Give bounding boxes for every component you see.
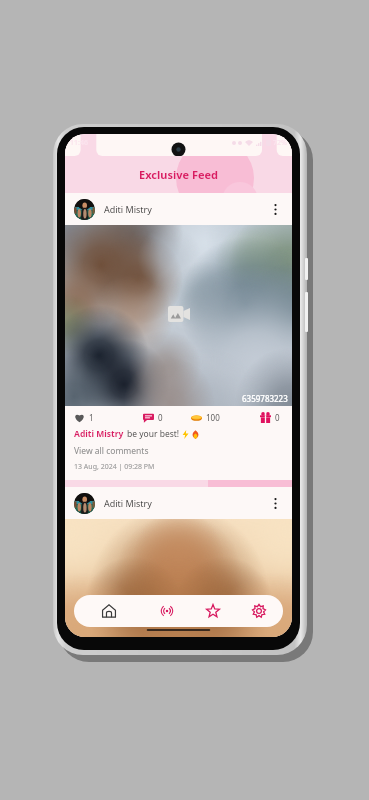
staticText: Exclusive Feed bbox=[139, 167, 219, 182]
staticText: be your best! bbox=[127, 428, 180, 440]
button[interactable]: Home bbox=[93, 595, 125, 627]
button[interactable]: Aditi Mistry bbox=[65, 193, 292, 225]
staticText: 100 bbox=[206, 412, 220, 423]
staticText: 0 bbox=[275, 412, 280, 423]
staticText: Aditi Mistry bbox=[104, 203, 152, 215]
button[interactable]: 6359783223 bbox=[65, 225, 292, 406]
staticText: 11:46 bbox=[70, 138, 88, 148]
button[interactable]: More options bbox=[266, 200, 284, 218]
button[interactable]: Aditi Mistry bbox=[65, 487, 292, 519]
button[interactable]: Favorites bbox=[197, 595, 229, 627]
button[interactable]: View all comments bbox=[74, 445, 149, 457]
staticText: Aditi Mistry bbox=[104, 497, 152, 509]
button[interactable] bbox=[65, 519, 292, 637]
button[interactable]: More options bbox=[266, 494, 284, 512]
staticText: 13 Aug, 2024 | 09:28 PM bbox=[74, 462, 155, 472]
button[interactable]: Settings bbox=[243, 595, 275, 627]
staticText: 1 bbox=[89, 412, 94, 423]
staticText: 72% bbox=[273, 138, 287, 148]
button[interactable]: Live bbox=[151, 595, 183, 627]
button[interactable]: 0 bbox=[260, 406, 280, 428]
staticText: 6359783223 bbox=[242, 393, 288, 404]
button[interactable]: 100 bbox=[191, 406, 220, 428]
button[interactable]: 0 bbox=[143, 406, 163, 428]
staticText: Aditi Mistry bbox=[74, 428, 124, 440]
button[interactable]: 1 bbox=[74, 406, 94, 428]
staticText: 0 bbox=[158, 412, 163, 423]
